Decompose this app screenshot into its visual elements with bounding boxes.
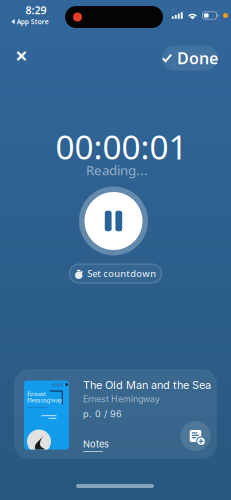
staticText: 00:00:01 bbox=[55, 124, 187, 169]
staticText: Hemingway bbox=[27, 397, 62, 404]
staticText: App Store bbox=[17, 17, 49, 26]
button[interactable]: Done bbox=[162, 45, 218, 70]
staticText: Notes bbox=[83, 438, 109, 450]
staticText: p. 0 / 96 bbox=[83, 408, 122, 419]
staticText: Ernest Hemingway bbox=[83, 394, 160, 404]
staticText: Set countdown bbox=[87, 267, 156, 280]
button[interactable]: Set countdown bbox=[69, 264, 161, 283]
button[interactable]: Close bbox=[6, 41, 36, 71]
button[interactable]: Pause bbox=[79, 186, 148, 255]
button[interactable]: Ernest bbox=[14, 369, 217, 459]
button[interactable]: Notes bbox=[83, 438, 109, 452]
staticText: Done bbox=[177, 47, 218, 69]
button[interactable]: Add note bbox=[180, 421, 210, 451]
staticText: The Old Man and the Sea bbox=[83, 378, 211, 392]
staticText: Ernest bbox=[27, 390, 46, 397]
staticText: Reading... bbox=[86, 161, 148, 179]
staticText: 8:29 bbox=[25, 3, 46, 17]
